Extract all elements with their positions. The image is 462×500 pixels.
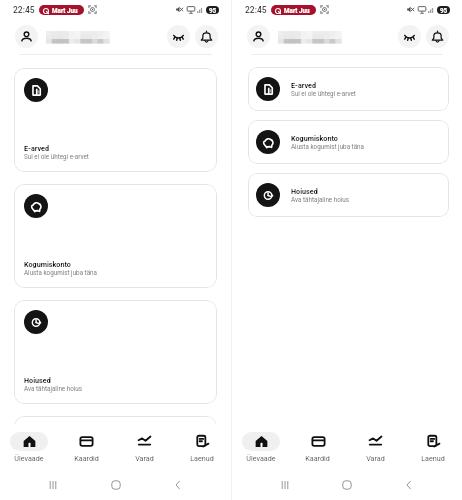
staticText: Kaardid <box>74 454 99 462</box>
staticText: E-arved <box>291 81 316 89</box>
button[interactable]: Notifications <box>195 25 218 48</box>
staticText: Mart Juu <box>284 7 310 14</box>
button[interactable]: Hide balance <box>398 25 421 48</box>
staticText: Sul ei ole ühtegi e-arvet <box>24 153 89 160</box>
staticText: 95 <box>209 7 217 14</box>
staticText: Kaardid <box>305 454 330 462</box>
button[interactable]: Home <box>108 477 124 493</box>
button[interactable]: Hide balance <box>167 25 190 48</box>
staticText: Mart Juu <box>52 7 78 14</box>
staticText: 22:45 <box>245 5 267 15</box>
staticText: Ülevaade <box>14 454 44 462</box>
staticText: Varad <box>366 454 385 462</box>
button[interactable]: Back <box>170 477 186 493</box>
staticText: Hoiused <box>291 187 318 195</box>
staticText: Sul ei ole ühtegi e-arvet <box>291 90 356 97</box>
staticText: 95 <box>440 7 448 14</box>
button[interactable]: Home <box>339 477 355 493</box>
button[interactable]: Kaardid <box>289 426 346 468</box>
staticText: Laenud <box>421 454 445 462</box>
staticText: Alusta kogumist juba täna <box>291 143 365 150</box>
button[interactable]: Kogumiskonto <box>248 120 449 164</box>
button[interactable]: Notifications <box>426 25 449 48</box>
button[interactable]: Hoiused <box>14 300 217 404</box>
button[interactable]: Recents <box>45 477 61 493</box>
staticText: 22:45 <box>13 5 35 15</box>
staticText: Ava tähtajaline hoius <box>24 385 83 392</box>
staticText: Kogumiskonto <box>291 134 338 142</box>
button[interactable]: Ülevaade <box>0 426 57 468</box>
button[interactable]: Varad <box>346 426 404 468</box>
button[interactable]: Laenud <box>173 426 231 468</box>
staticText: E-arved <box>24 144 49 152</box>
button[interactable]: Profile <box>15 25 38 48</box>
button[interactable]: E-arved <box>248 67 449 111</box>
button[interactable]: Varad <box>115 426 173 468</box>
button[interactable]: Laenud <box>404 426 462 468</box>
staticText: Laenud <box>190 454 214 462</box>
button[interactable]: Back <box>401 477 417 493</box>
button[interactable]: Recents <box>277 477 293 493</box>
staticText: Ülevaade <box>246 454 276 462</box>
staticText: Alusta kogumist juba täna <box>24 269 98 276</box>
button[interactable]: E-arved <box>14 68 217 172</box>
staticText: Hoiused <box>24 376 51 384</box>
button[interactable]: Profile <box>247 25 270 48</box>
staticText: Varad <box>135 454 154 462</box>
button[interactable]: Kaardid <box>57 426 115 468</box>
button[interactable]: Investeerimine <box>14 416 217 424</box>
button[interactable]: Kogumiskonto <box>14 184 217 288</box>
button[interactable]: Hoiused <box>248 173 449 217</box>
staticText: Ava tähtajaline hoius <box>291 196 350 203</box>
button[interactable]: Ülevaade <box>232 426 289 468</box>
staticText: Kogumiskonto <box>24 260 71 268</box>
